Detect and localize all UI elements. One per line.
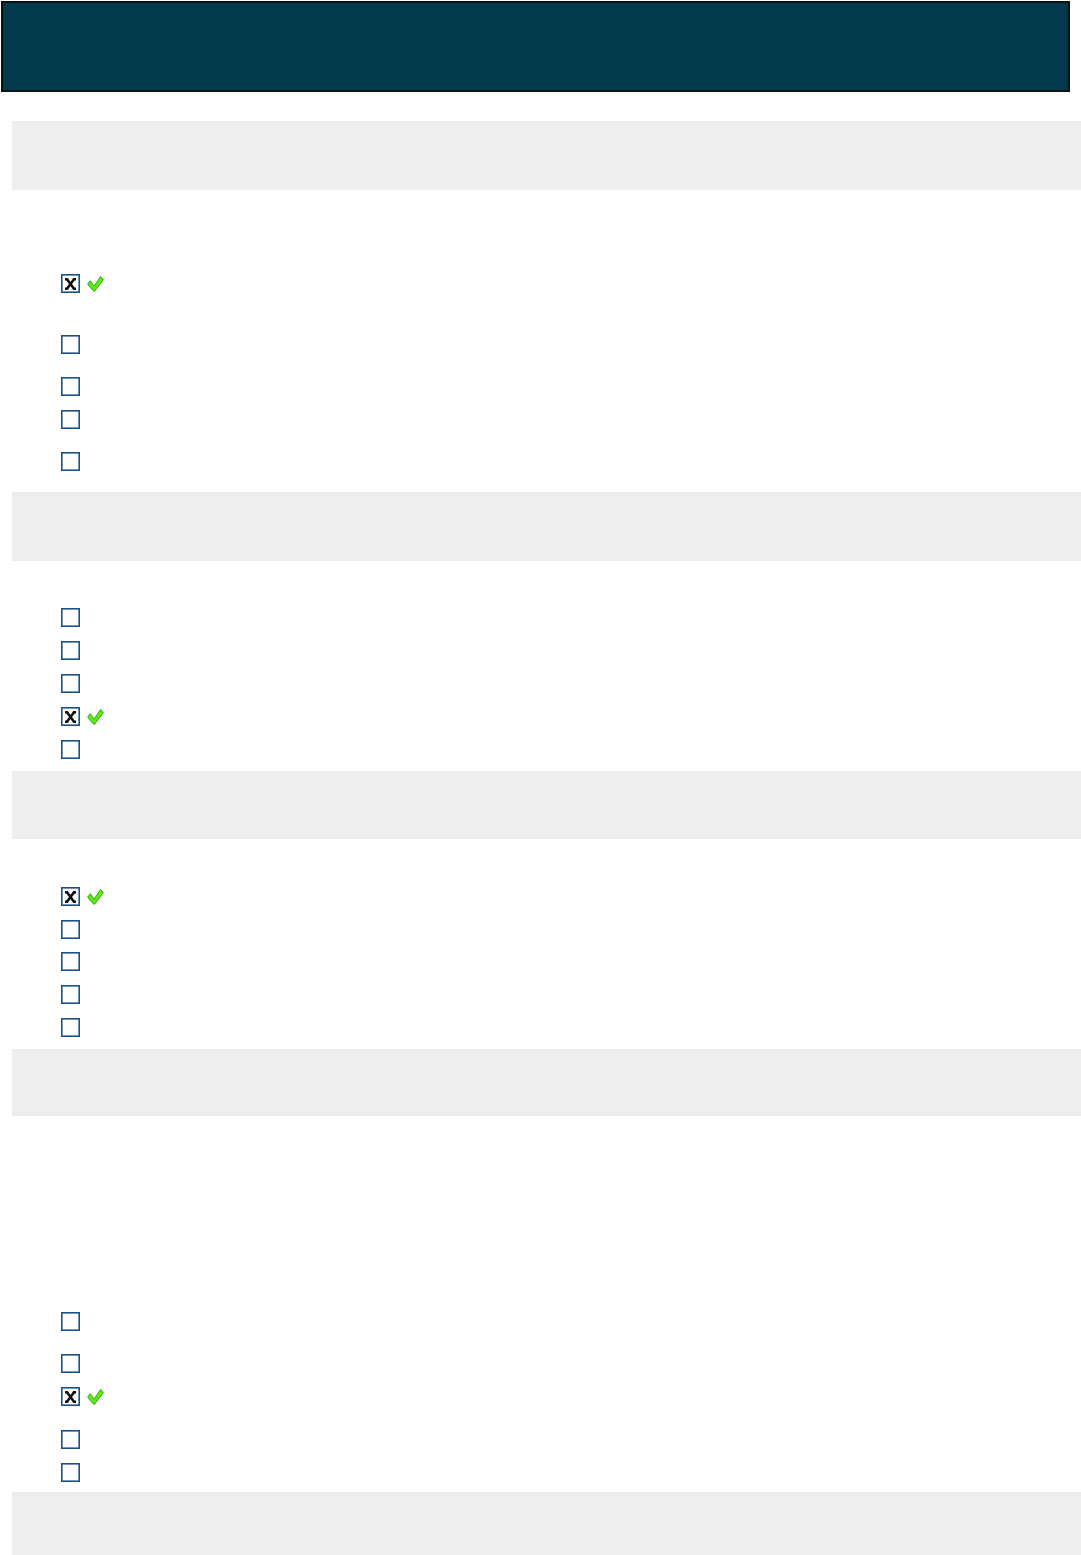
button[interactable]: Selected answer option [61, 274, 103, 293]
button[interactable]: Answer option [61, 952, 80, 971]
button[interactable]: Selected answer option [61, 707, 103, 726]
button[interactable]: Quiz header banner [1, 1, 1070, 92]
button[interactable]: Answer option [61, 920, 80, 939]
button[interactable]: Answer option [61, 1312, 80, 1331]
button[interactable]: Selected answer option [61, 887, 103, 906]
button[interactable]: Answer option [61, 410, 80, 429]
button[interactable]: Answer option [61, 452, 80, 471]
button[interactable]: Answer option [61, 740, 80, 759]
button[interactable]: Answer option [61, 641, 80, 660]
button[interactable]: Answer option [61, 608, 80, 627]
button[interactable]: Answer option [61, 1463, 80, 1482]
button[interactable]: Answer option [61, 377, 80, 396]
button[interactable]: Answer option [61, 985, 80, 1004]
button[interactable]: Selected answer option [61, 1387, 103, 1406]
button[interactable]: Answer option [61, 1354, 80, 1373]
button[interactable]: Answer option [61, 335, 80, 354]
button[interactable]: Answer option [61, 1430, 80, 1449]
button[interactable]: Answer option [61, 674, 80, 693]
button[interactable]: Answer option [61, 1018, 80, 1037]
